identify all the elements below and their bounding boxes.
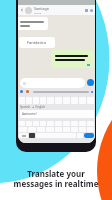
button[interactable]: Call — [90, 9, 93, 12]
staticText: Translate your messages in realtime — [0, 168, 112, 189]
button[interactable]: Video call — [85, 9, 88, 12]
staticText: Santiago — [34, 6, 49, 11]
other: Back — [20, 8, 24, 12]
button[interactable]: Fantástico — [19, 37, 55, 48]
staticText: Spanish ➜ English — [20, 105, 46, 109]
staticText: Fantástico — [27, 40, 47, 45]
button[interactable]: Awesome! — [20, 110, 94, 118]
button[interactable] — [20, 78, 85, 88]
button[interactable] — [51, 50, 94, 68]
staticText: online — [34, 11, 41, 14]
staticText: Awesome! — [22, 112, 37, 116]
button[interactable] — [29, 133, 35, 138]
button[interactable] — [18, 17, 48, 30]
button[interactable]: Send — [87, 79, 94, 86]
button[interactable]: Enter — [84, 133, 94, 138]
button[interactable] — [19, 133, 28, 138]
